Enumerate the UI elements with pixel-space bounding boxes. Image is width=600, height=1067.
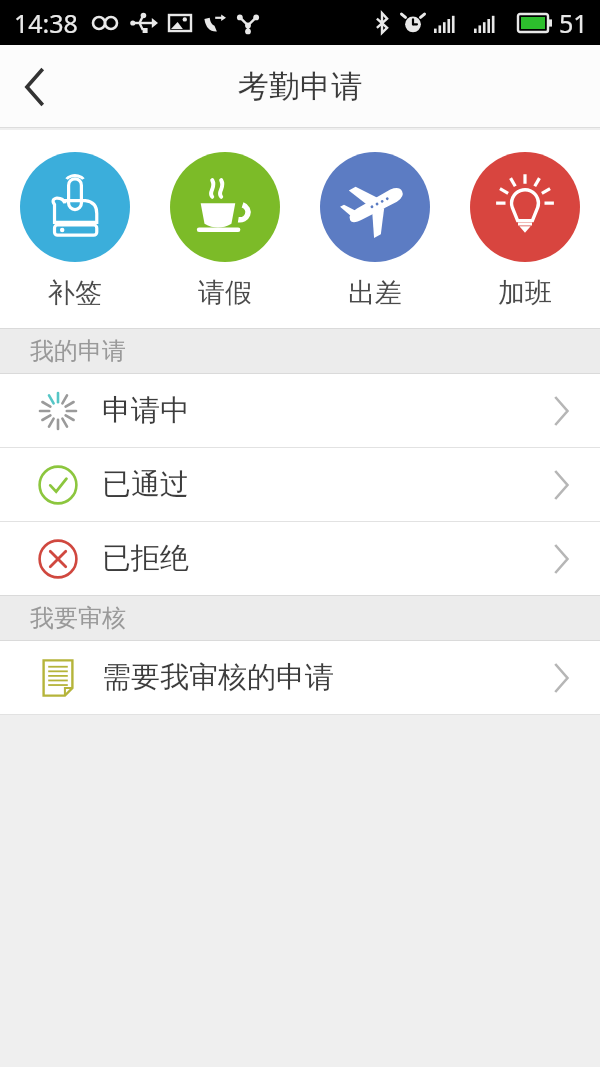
- button[interactable]: 补签: [0, 130, 150, 328]
- staticText: 需要我审核的申请: [102, 659, 334, 696]
- staticText: 我要审核: [30, 603, 126, 633]
- button[interactable]: 出差: [300, 130, 450, 328]
- button[interactable]: 申请中: [0, 374, 600, 447]
- staticText: 加班: [498, 276, 552, 310]
- staticText: 已通过: [102, 466, 189, 503]
- staticText: 我的申请: [30, 336, 126, 366]
- button[interactable]: 需要我审核的申请: [0, 641, 600, 714]
- button[interactable]: 请假: [150, 130, 300, 328]
- staticText: 考勤申请: [238, 67, 362, 106]
- button[interactable]: 加班: [450, 130, 600, 328]
- staticText: 补签: [48, 276, 102, 310]
- staticText: 请假: [198, 276, 252, 310]
- button[interactable]: 已拒绝: [0, 522, 600, 595]
- button[interactable]: Back: [0, 51, 72, 123]
- staticText: 出差: [348, 276, 402, 310]
- button[interactable]: 已通过: [0, 448, 600, 521]
- staticText: 14:38: [14, 6, 78, 40]
- staticText: 已拒绝: [102, 540, 189, 577]
- staticText: 51: [559, 6, 588, 40]
- staticText: 申请中: [102, 392, 189, 429]
